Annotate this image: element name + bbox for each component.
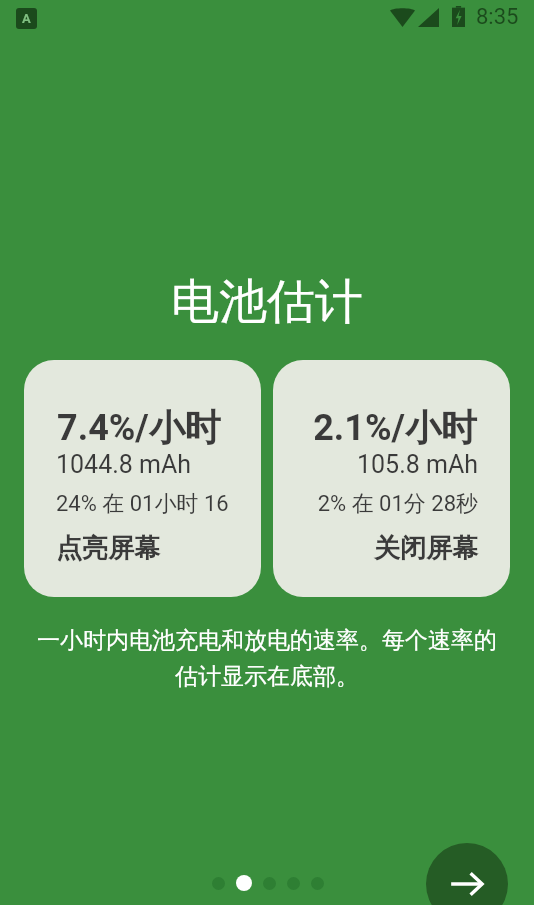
staticText: 7.4%/小时 — [57, 405, 221, 450]
button[interactable]: 7.4%/小时 — [24, 360, 261, 597]
staticText: 1044.8 mAh — [56, 450, 192, 479]
staticText: 一小时内电池充电和放电的速率。每个速率的 估计显示在底部。 — [0, 626, 534, 691]
staticText: 2.1%/小时 — [313, 405, 477, 450]
staticText: 105.8 mAh — [357, 450, 478, 479]
staticText: A — [22, 11, 31, 26]
staticText: 点亮屏幕 — [56, 532, 160, 565]
staticText: 电池估计 — [0, 272, 534, 332]
staticText: 24% 在 01小时 16 — [56, 490, 229, 518]
button[interactable]: Next page — [426, 843, 508, 905]
staticText: 关闭屏幕 — [374, 532, 478, 565]
staticText: 2% 在 01分 28秒 — [317, 490, 478, 518]
staticText: 8:35 — [476, 4, 519, 30]
button[interactable]: 2.1%/小时 — [273, 360, 510, 597]
